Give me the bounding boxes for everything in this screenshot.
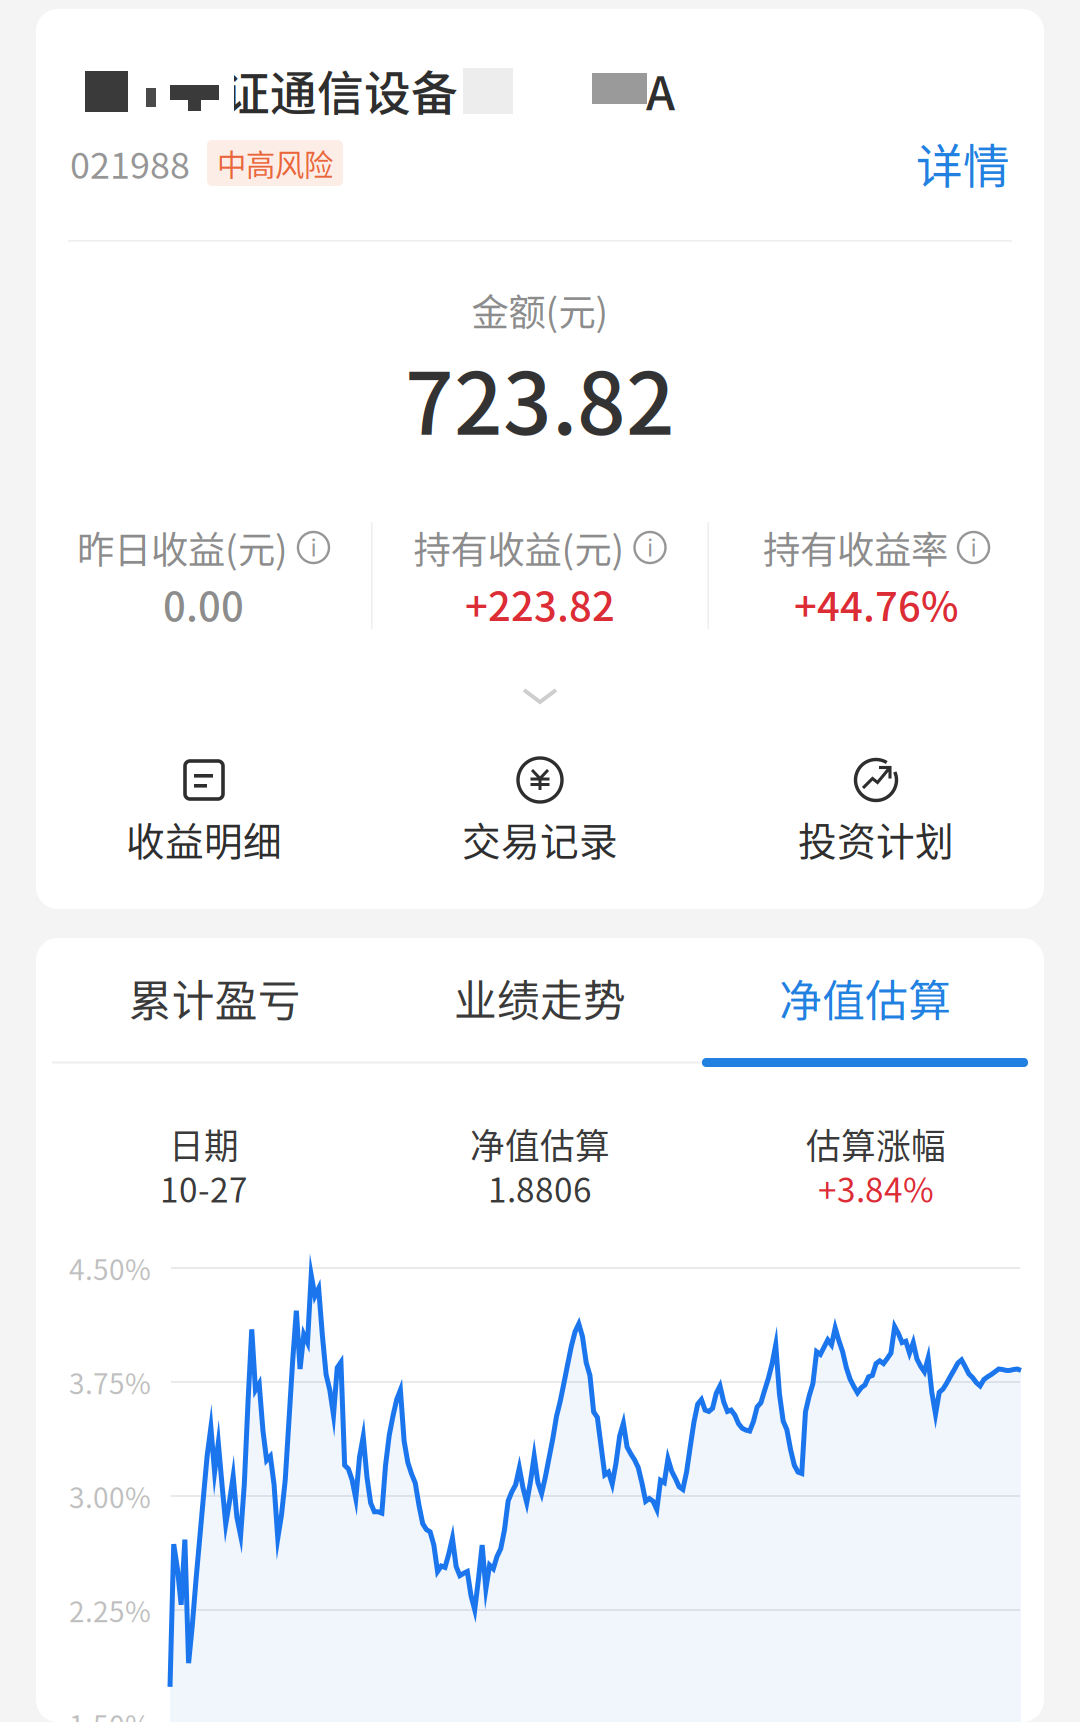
staticText: +223.82 [465,574,615,632]
button[interactable]: 收益明细 [36,757,372,856]
staticText: 净值估算 [779,967,951,1029]
staticText: 3.75% [69,1362,151,1402]
staticText: 3.00% [69,1476,151,1516]
staticText: 富国中证通信设备指数增强A [82,56,675,124]
staticText: 2.25% [69,1590,151,1630]
staticText: 021988 [70,137,190,189]
staticText: 详情 [916,129,1010,197]
staticText: 投资计划 [798,811,954,867]
staticText: 业绩走势 [454,967,626,1029]
staticText: 持有收益率 [763,520,948,575]
staticText: +44.76% [794,574,959,632]
button[interactable]: 交易记录 [372,757,708,856]
staticText: 收益明细 [126,811,282,867]
staticText: 0.00 [163,574,244,632]
staticText: +3.84% [818,1164,934,1212]
staticText: i [310,530,316,563]
staticText: 净值估算 [470,1119,610,1169]
staticText: 金额(元) [471,283,608,337]
staticText: 1.50% [69,1704,151,1722]
staticText: 日期 [169,1119,239,1169]
staticText: i [970,530,976,563]
button[interactable]: 业绩走势 [377,938,703,1058]
staticText: 1.8806 [488,1164,592,1212]
staticText: 估算涨幅 [806,1119,946,1169]
button[interactable]: 详情 [916,129,1010,197]
staticText: 昨日收益(元) [77,520,288,575]
button[interactable]: 展开 [36,688,1044,704]
button[interactable]: 净值估算 [703,938,1028,1058]
staticText: 723.82 [405,336,675,459]
staticText: 10-27 [160,1164,248,1212]
button[interactable]: 投资计划 [708,757,1044,856]
staticText: 交易记录 [462,811,618,867]
staticText: 中高风险 [217,142,333,184]
staticText: 累计盈亏 [129,967,301,1029]
button[interactable]: 累计盈亏 [52,938,377,1058]
staticText: 4.50% [69,1248,151,1288]
staticText: 持有收益(元) [413,520,624,575]
staticText: i [647,530,653,563]
